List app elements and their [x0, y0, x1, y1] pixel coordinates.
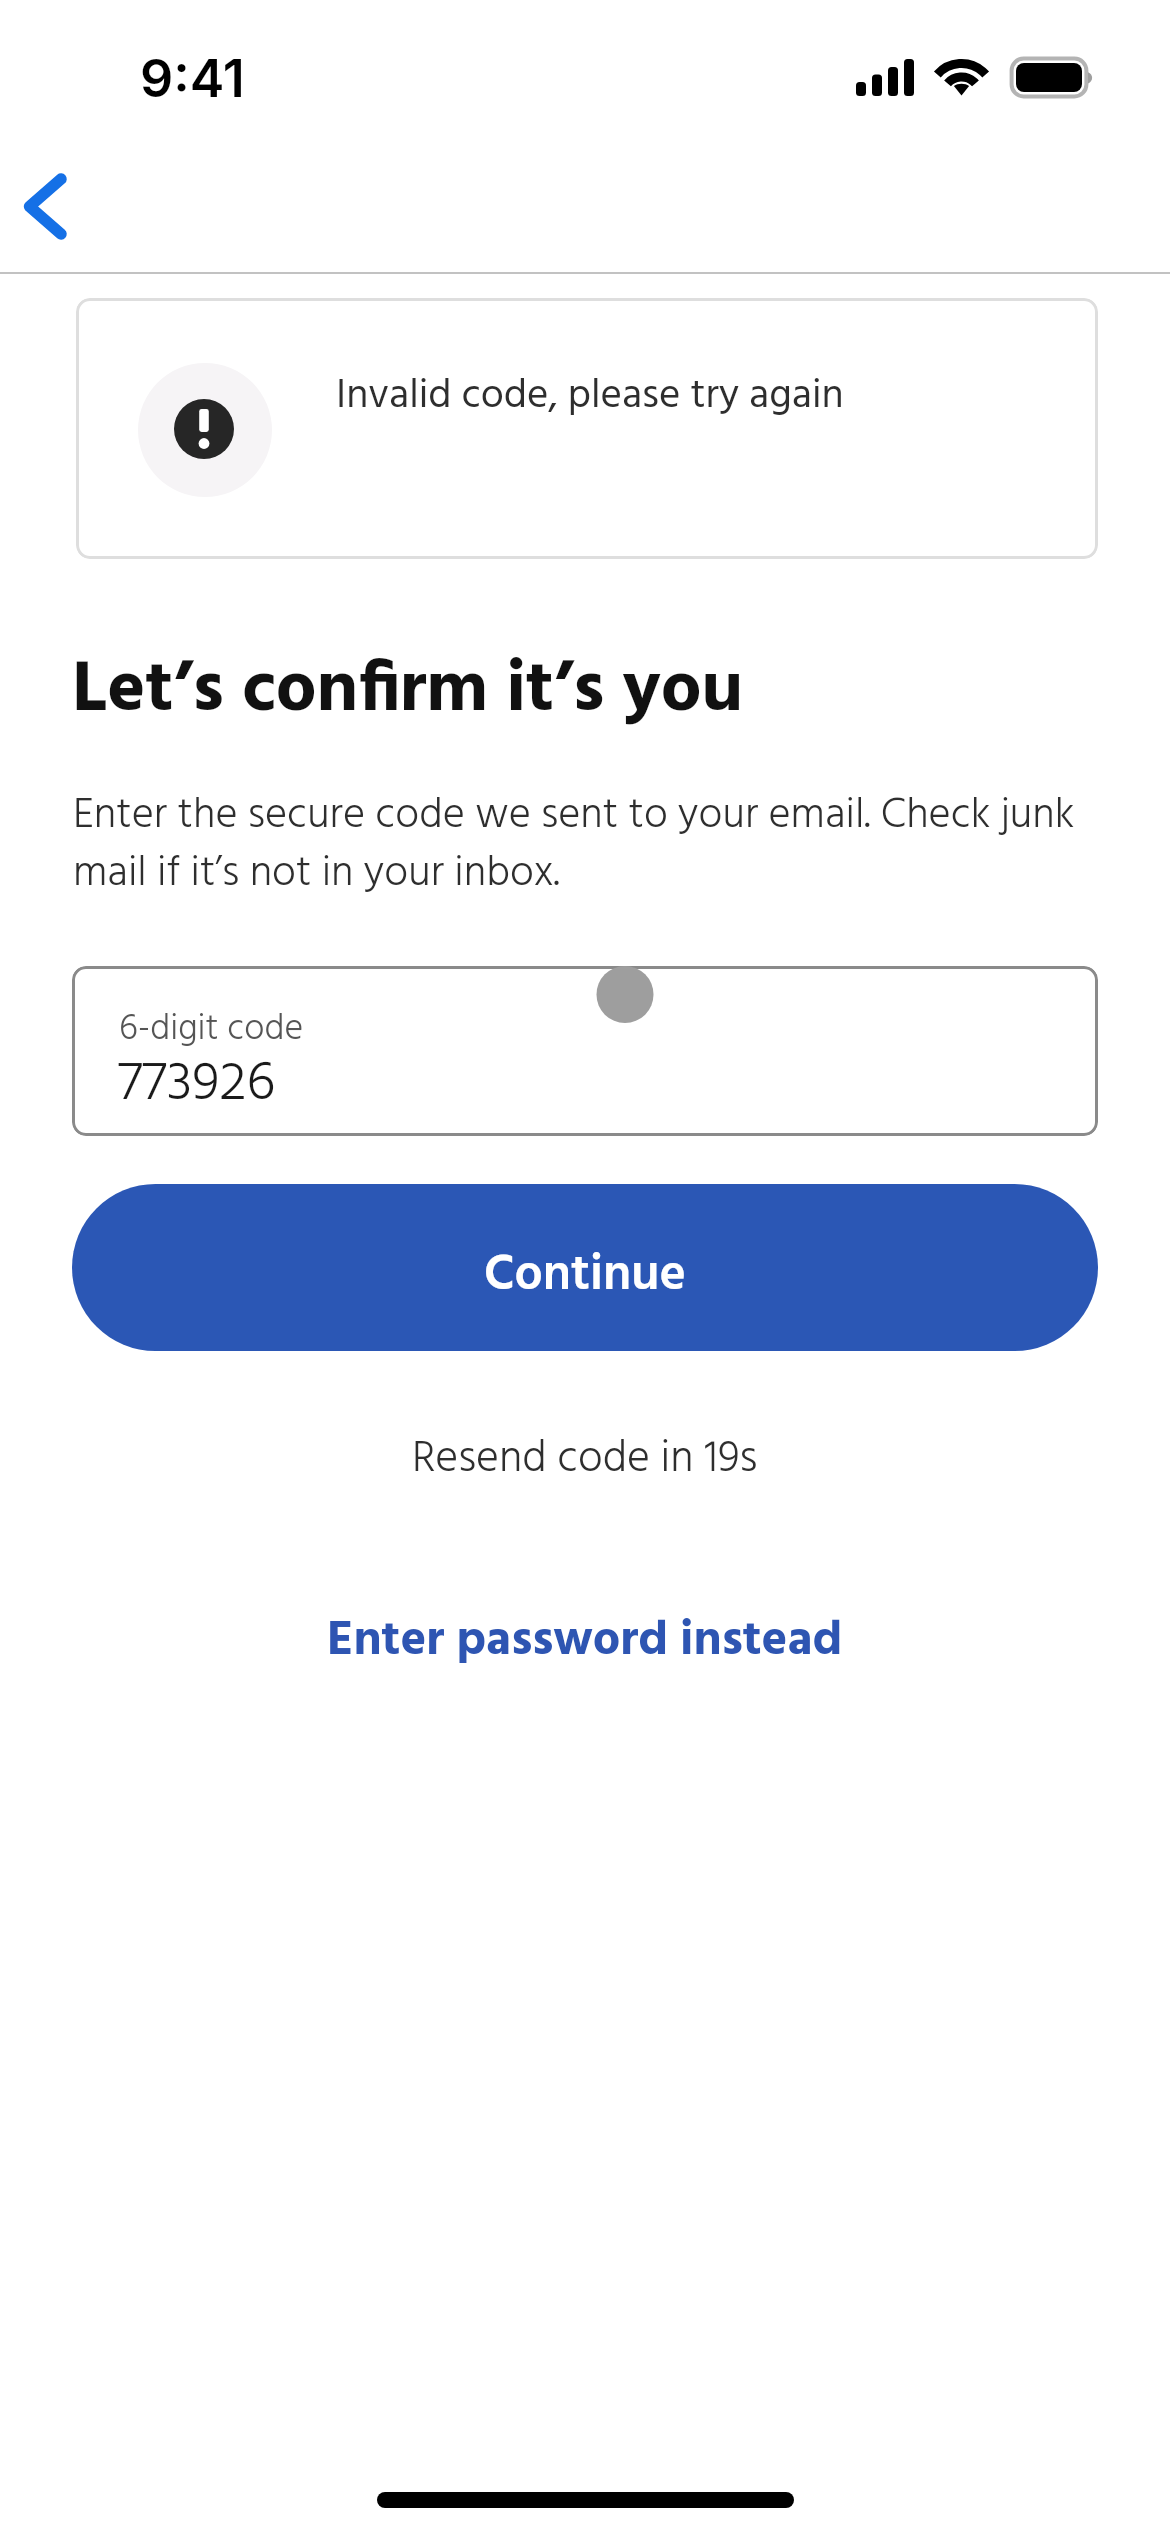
- staticText: Resend code in 19s: [412, 1425, 758, 1495]
- staticText: 9:41: [140, 47, 245, 110]
- staticText: 6-digit code: [119, 1001, 304, 1059]
- button[interactable]: Enter password instead: [303, 1591, 867, 1693]
- button[interactable]: 6-digit code: [72, 966, 1098, 1136]
- staticText: Enter password instead: [327, 1603, 843, 1681]
- staticText: Invalid code, please try again: [336, 364, 844, 430]
- button[interactable]: Back: [0, 140, 132, 272]
- staticText: Continue: [484, 1236, 686, 1316]
- staticText: 773926: [118, 1041, 276, 1129]
- staticText: Let’s confirm it’s you: [72, 634, 744, 749]
- staticText: Enter the secure code we sent to your em…: [73, 782, 1108, 908]
- button[interactable]: Continue: [72, 1184, 1098, 1351]
